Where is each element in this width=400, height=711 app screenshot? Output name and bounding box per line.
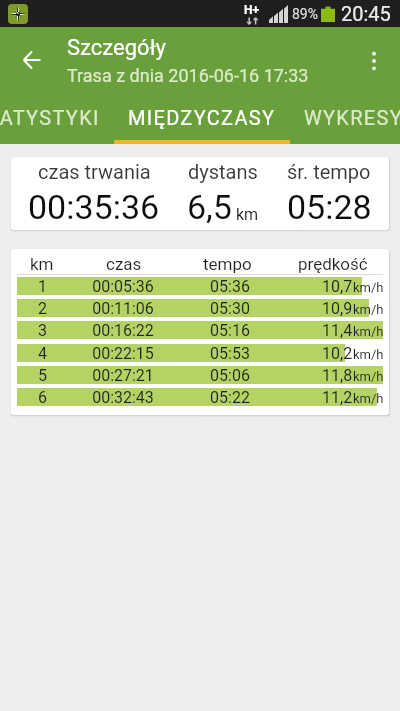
staticText: tempo: [203, 254, 252, 274]
staticText: km/h: [353, 324, 384, 339]
staticText: 89%: [292, 6, 318, 22]
staticText: 00:32:43: [92, 388, 154, 406]
staticText: 00:05:36: [92, 277, 154, 295]
staticText: 3: [38, 321, 47, 339]
staticText: 4: [38, 344, 47, 362]
staticText: km/h: [353, 280, 384, 295]
staticText: 05:36: [210, 277, 250, 295]
staticText: 11,4: [322, 321, 353, 339]
staticText: H+: [244, 3, 260, 17]
staticText: km/h: [353, 369, 384, 384]
staticText: 10,2: [322, 344, 353, 362]
staticText: 00:22:15: [92, 344, 154, 362]
staticText: 00:11:06: [92, 299, 154, 317]
staticText: km/h: [353, 302, 384, 317]
staticText: km: [30, 254, 54, 274]
staticText: 00:35:36: [28, 187, 160, 227]
staticText: 6: [38, 388, 47, 406]
staticText: czas: [106, 254, 142, 274]
staticText: Trasa z dnia 2016-06-16 17:33: [67, 65, 309, 86]
staticText: czas trwania: [38, 160, 151, 183]
staticText: 5: [38, 366, 47, 384]
staticText: WYKRESY: [304, 106, 400, 129]
button[interactable]: Back: [12, 41, 52, 81]
staticText: 00:16:22: [92, 321, 154, 339]
staticText: 2: [38, 299, 47, 317]
staticText: 1: [38, 277, 47, 295]
staticText: STATYSTYKI: [0, 106, 100, 129]
button[interactable]: STATYSTYKI: [0, 95, 114, 144]
button[interactable]: MIĘDZYCZASY: [114, 95, 290, 144]
staticText: dystans: [188, 160, 258, 183]
staticText: 05:53: [210, 344, 250, 362]
button[interactable]: More options: [354, 41, 394, 81]
button[interactable]: WYKRESY: [290, 95, 400, 144]
staticText: Szczegóły: [67, 35, 166, 61]
staticText: km: [236, 205, 259, 224]
staticText: 05:30: [210, 299, 250, 317]
staticText: 10,7: [322, 277, 353, 295]
staticText: 05:28: [287, 187, 372, 227]
staticText: 00:27:21: [92, 366, 154, 384]
staticText: 6,5: [187, 187, 232, 227]
staticText: km/h: [353, 391, 384, 406]
staticText: 10,9: [322, 299, 353, 317]
staticText: km/h: [353, 347, 384, 362]
staticText: 05:22: [210, 388, 250, 406]
staticText: 11,2: [322, 388, 353, 406]
staticText: 05:06: [210, 366, 250, 384]
staticText: MIĘDZYCZASY: [128, 106, 276, 129]
staticText: prędkość: [298, 254, 368, 274]
staticText: 11,8: [322, 366, 353, 384]
staticText: 20:45: [341, 2, 391, 25]
staticText: śr. tempo: [287, 160, 371, 183]
staticText: 05:16: [210, 321, 250, 339]
